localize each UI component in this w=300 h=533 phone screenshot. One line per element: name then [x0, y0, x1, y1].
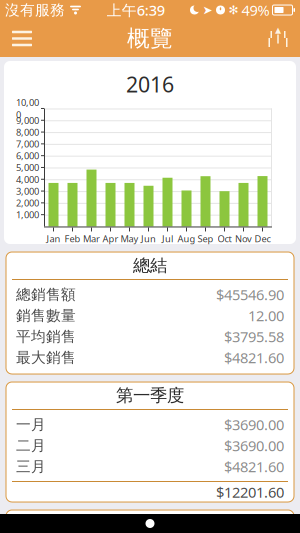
staticText: ✻: [228, 3, 238, 17]
staticText: ➤: [202, 3, 212, 17]
staticText: Feb: [64, 232, 80, 245]
staticText: Aug: [177, 232, 195, 245]
staticText: 49%: [241, 0, 269, 20]
button[interactable]: 第一季度: [0, 382, 300, 502]
staticText: Oct: [217, 232, 231, 245]
staticText: May: [120, 232, 138, 245]
staticText: 總銷售額: [16, 285, 76, 303]
staticText: Dec: [254, 232, 270, 245]
staticText: 一月: [16, 415, 46, 433]
button[interactable]: Share: [256, 20, 300, 56]
staticText: 三月: [16, 457, 46, 475]
staticText: $3690.00: [224, 436, 284, 455]
staticText: 沒有服務: [5, 1, 65, 19]
staticText: 1,000: [16, 208, 39, 221]
button[interactable]: 第二季度: [0, 510, 300, 533]
staticText: $3795.58: [224, 327, 284, 346]
staticText: $4821.60: [224, 457, 284, 476]
staticText: 7,000: [16, 138, 39, 150]
staticText: 10,000: [16, 96, 39, 121]
staticText: ▲: [275, 25, 281, 35]
staticText: 第一季度: [116, 385, 184, 406]
staticText: 9,000: [16, 114, 39, 126]
staticText: 4,000: [16, 173, 39, 185]
staticText: 第二季度: [116, 513, 184, 533]
staticText: $12201.60: [216, 482, 284, 502]
staticText: 平均銷售: [16, 327, 76, 345]
staticText: 最大銷售: [16, 348, 76, 366]
staticText: Jun: [141, 232, 156, 245]
staticText: Mar: [83, 232, 100, 245]
staticText: 概覽: [127, 25, 173, 52]
staticText: 2016: [126, 70, 174, 98]
staticText: 銷售數量: [16, 306, 76, 324]
staticText: Sep: [197, 232, 213, 245]
staticText: $4821.60: [224, 348, 284, 367]
staticText: 6,000: [16, 149, 39, 162]
staticText: 12.00: [248, 306, 284, 325]
staticText: $45546.90: [216, 285, 284, 304]
staticText: 2,000: [16, 197, 39, 209]
staticText: 3,000: [16, 185, 39, 197]
staticText: 上午6:39: [107, 0, 165, 20]
staticText: 8,000: [16, 126, 39, 138]
staticText: Apr: [102, 232, 118, 245]
staticText: $3690.00: [224, 415, 284, 434]
staticText: 5,000: [16, 161, 39, 174]
staticText: Jul: [162, 232, 173, 245]
staticText: Nov: [235, 232, 252, 245]
button[interactable]: 總結: [0, 252, 300, 374]
staticText: 二月: [16, 436, 46, 454]
button[interactable]: Menu: [0, 20, 44, 56]
staticText: 總結: [133, 255, 167, 276]
staticText: Jan: [46, 232, 60, 245]
